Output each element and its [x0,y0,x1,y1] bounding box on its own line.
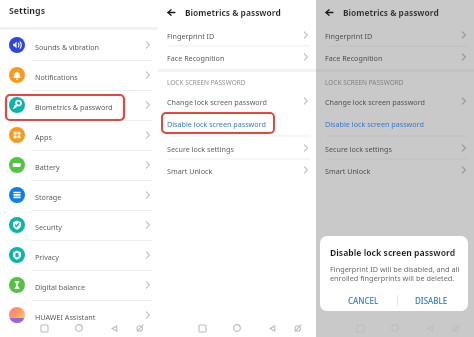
staticText: Change lock screen password [167,97,267,107]
staticText: Biometrics & password [185,7,281,18]
staticText: CANCEL [348,295,379,306]
button[interactable]: Back [323,6,336,19]
button[interactable]: Disable lock screen password [158,112,316,134]
button[interactable]: CANCEL [330,289,397,311]
button[interactable]: Secure lock settings [158,137,316,159]
button[interactable]: DISABLE [398,289,465,311]
button[interactable]: Privacy [0,240,158,270]
staticText: Storage [35,192,62,202]
staticText: Battery [35,162,60,172]
button[interactable]: Face Recognition [316,46,474,68]
button[interactable]: Fingerprint ID [158,24,316,46]
button[interactable]: Hide navigation bar [449,321,463,335]
staticText: Fingerprint ID [325,31,373,41]
button[interactable]: Sounds & vibration [0,30,158,60]
staticText: Sounds & vibration [35,42,100,52]
staticText: Security [35,222,62,232]
button[interactable]: Biometrics & password [0,90,158,120]
button[interactable]: Storage [0,180,158,210]
button[interactable]: Disable lock screen password [316,112,474,134]
button[interactable]: Smart Unlock [158,159,316,181]
staticText: Notifications [35,72,78,82]
staticText: Face Recognition [167,53,225,63]
button[interactable]: Digital balance [0,270,158,300]
button[interactable]: Notifications [0,60,158,90]
button[interactable]: Smart Unlock [316,159,474,181]
staticText: Digital balance [35,282,86,292]
button[interactable]: Home [72,321,86,335]
staticText: Secure lock settings [325,144,392,154]
button[interactable]: Face Recognition [158,46,316,68]
button[interactable]: Change lock screen password [158,90,316,112]
button[interactable]: Back [107,321,121,335]
staticText: LOCK SCREEN PASSWORD [167,78,246,87]
staticText: Change lock screen password [325,97,425,107]
staticText: HUAWEI Assistant [35,312,96,322]
staticText: Face Recognition [325,53,383,63]
button[interactable]: Secure lock settings [316,137,474,159]
staticText: Smart Unlock [325,166,371,176]
staticText: Privacy [35,252,59,262]
button[interactable]: Fingerprint ID [316,24,474,46]
staticText: Smart Unlock [167,166,213,176]
staticText: Fingerprint ID [167,31,215,41]
button[interactable]: Back [165,6,178,19]
staticText: Secure lock settings [167,144,234,154]
staticText: LOCK SCREEN PASSWORD [325,78,404,87]
button[interactable]: Home [388,321,402,335]
staticText: Fingerprint ID will be disabled, and all… [330,264,460,284]
button[interactable]: Change lock screen password [316,90,474,112]
button[interactable]: Back [265,321,279,335]
staticText: Disable lock screen password [325,119,424,129]
button[interactable]: Security [0,210,158,240]
button[interactable]: Battery [0,150,158,180]
staticText: Settings [9,5,46,17]
staticText: Disable lock screen password [167,119,266,129]
staticText: Apps [35,132,52,142]
staticText: Biometrics & password [35,102,113,112]
button[interactable]: Home [230,321,244,335]
button[interactable]: Recents [37,321,51,335]
staticText: DISABLE [415,295,448,306]
staticText: Disable lock screen password [330,247,456,259]
button[interactable]: HUAWEI Assistant [0,300,158,330]
button[interactable]: Hide navigation bar [133,321,147,335]
staticText: Biometrics & password [343,7,439,18]
button[interactable]: Apps [0,120,158,150]
button[interactable]: Hide navigation bar [291,321,305,335]
button[interactable]: Recents [195,321,209,335]
